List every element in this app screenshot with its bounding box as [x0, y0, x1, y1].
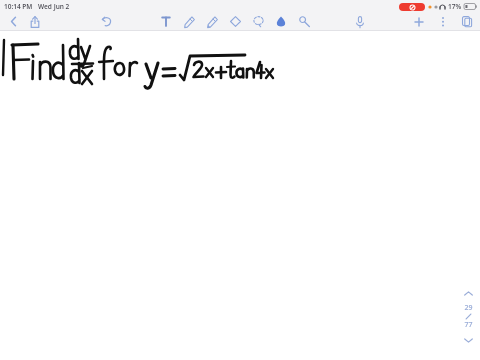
button[interactable]: Record audio	[352, 13, 368, 30]
button[interactable]: Pen tool	[181, 13, 197, 30]
button[interactable]: Lasso select	[250, 13, 266, 30]
button[interactable]: Highlighter tool	[204, 13, 220, 30]
staticText: 17%	[448, 2, 462, 11]
button[interactable]: Ink color	[273, 13, 289, 30]
button[interactable]: Eraser tool	[227, 13, 243, 30]
button[interactable]: New note	[411, 13, 427, 30]
button[interactable]: Previous page	[460, 287, 476, 299]
button[interactable]: More options	[435, 13, 451, 30]
staticText: Wed Jun 2	[38, 2, 70, 11]
button[interactable]: Back	[5, 13, 21, 30]
staticText: 29	[464, 303, 473, 313]
button[interactable]: Next page	[460, 334, 476, 346]
button[interactable]: Undo	[98, 13, 114, 30]
button[interactable]	[0, 31, 480, 360]
button[interactable]: Share	[27, 13, 43, 30]
staticText: 77	[464, 320, 473, 330]
staticText: 10:14 PM	[4, 2, 33, 11]
button[interactable]: Page thumbnails	[459, 13, 475, 30]
button[interactable]: Page 29 of 77	[464, 303, 473, 330]
button[interactable]: Text tool	[158, 13, 174, 30]
button[interactable]: Shape tool	[296, 13, 312, 30]
